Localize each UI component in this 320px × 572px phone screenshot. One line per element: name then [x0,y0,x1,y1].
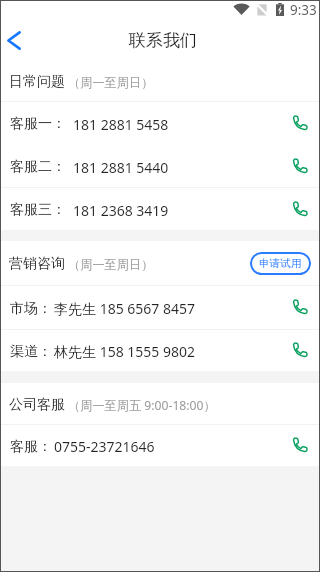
button[interactable]: 申请试用 [250,252,311,275]
button[interactable]: Call [290,156,310,176]
staticText: 0755-23721646 [54,437,155,456]
staticText: 李先生 185 6567 8457 [54,299,196,318]
staticText: 9:33 [290,1,317,17]
staticText: 客服二： [10,158,66,176]
staticText: 181 2368 3419 [73,201,169,220]
button[interactable]: 市场： [1,285,319,329]
staticText: 日常问题 [9,73,65,91]
button[interactable]: 客服： [1,424,319,466]
button[interactable]: 客服二： [1,144,319,187]
staticText: 181 2881 5440 [73,158,169,177]
button[interactable]: Call [290,199,310,219]
button[interactable]: Call [290,113,310,133]
staticText: 联系我们 [129,30,197,51]
button[interactable]: Back [1,21,27,61]
staticText: （周一至周五 9:00-18:00） [68,397,216,414]
staticText: 客服： [10,438,52,456]
staticText: （周一至周日） [68,257,154,272]
staticText: 营销咨询 [9,255,65,273]
button[interactable]: 客服一： [1,101,319,144]
staticText: 渠道： [10,343,52,361]
button[interactable]: 客服三： [1,187,319,230]
staticText: 申请试用 [259,257,302,270]
staticText: 客服三： [10,201,66,219]
button[interactable]: Call [290,340,310,360]
staticText: 客服一： [10,115,66,133]
button[interactable]: 渠道： [1,329,319,371]
staticText: （周一至周日） [68,75,154,90]
button[interactable]: Call [290,435,310,455]
staticText: 公司客服 [9,396,65,414]
button[interactable]: Call [290,297,310,317]
staticText: 林先生 158 1555 9802 [54,342,196,361]
staticText: 市场： [10,300,52,318]
staticText: 181 2881 5458 [73,115,169,134]
